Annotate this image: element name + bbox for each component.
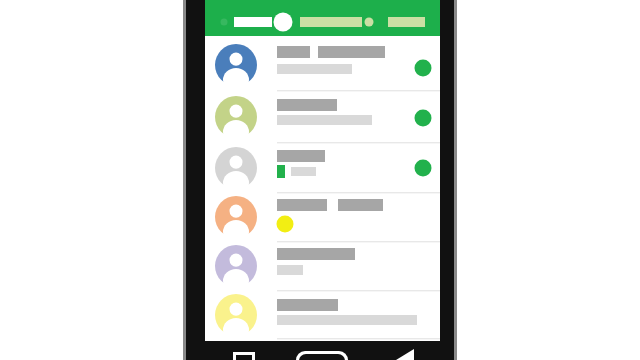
button[interactable]: Conversation 1 — [205, 36, 440, 91]
button[interactable]: App bar — [205, 0, 440, 36]
button[interactable]: Conversation 2 — [205, 91, 440, 143]
button[interactable]: Conversation 4 — [205, 193, 440, 242]
button[interactable]: Conversation 3 — [205, 143, 440, 193]
button[interactable]: Conversation 6 — [205, 291, 440, 338]
button[interactable]: Conversation 5 — [205, 242, 440, 291]
